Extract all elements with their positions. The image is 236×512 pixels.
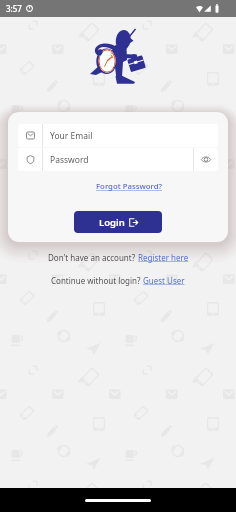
staticText: 3:57 [6,3,22,14]
button[interactable]: Guest User [143,275,185,286]
button[interactable]: Your Email [18,124,218,147]
button[interactable]: Login [74,211,162,233]
staticText: Login [99,216,125,229]
button[interactable]: Forgot Password? [96,181,163,192]
button[interactable]: Show password [194,148,218,171]
staticText: Your Email [50,130,93,142]
button[interactable]: Password [18,148,218,171]
staticText: Password [50,154,89,166]
staticText: Don't have an account? [48,252,138,263]
staticText: Continue without login? [51,275,143,286]
button[interactable]: Register here [138,252,189,263]
